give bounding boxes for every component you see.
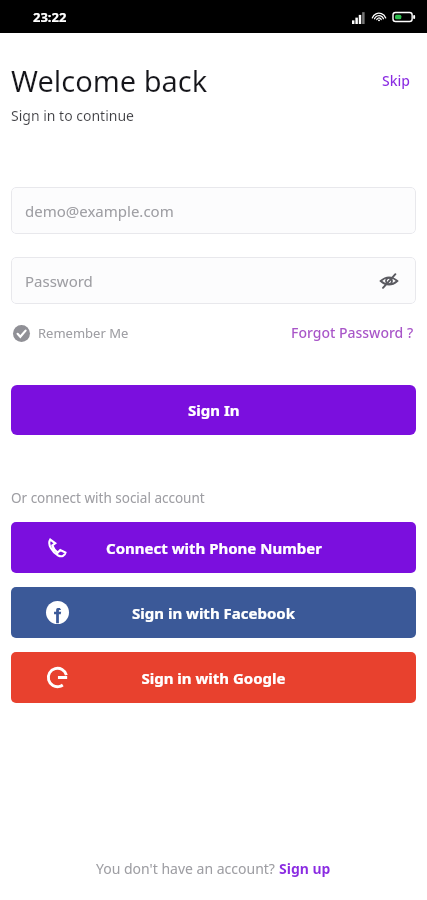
button[interactable]: Connect with Phone Number xyxy=(11,522,416,573)
button[interactable]: Sign in with Facebook xyxy=(11,587,416,638)
staticText: Welcome back xyxy=(11,61,208,100)
staticText: Connect with Phone Number xyxy=(106,538,322,558)
button[interactable]: Password xyxy=(11,257,416,304)
staticText: Sign in with Facebook xyxy=(132,603,295,623)
button[interactable]: Sign up xyxy=(279,859,331,878)
staticText: You don't have an account? xyxy=(96,859,279,878)
staticText: Forgot Password ? xyxy=(291,323,414,342)
button[interactable]: demo@example.com xyxy=(11,187,416,234)
staticText: Skip xyxy=(382,71,410,90)
staticText: demo@example.com xyxy=(25,201,174,221)
button[interactable]: Sign In xyxy=(11,385,416,435)
button[interactable]: Forgot Password ? xyxy=(289,320,416,345)
staticText: Sign up xyxy=(279,859,331,878)
staticText: Sign in to continue xyxy=(11,106,134,125)
button[interactable]: Remember Me xyxy=(11,321,131,345)
staticText: Password xyxy=(25,271,93,291)
staticText: Or connect with social account xyxy=(11,489,205,507)
staticText: Remember Me xyxy=(38,324,129,342)
button[interactable]: Toggle password visibility xyxy=(376,268,402,294)
button[interactable]: Skip xyxy=(376,67,416,94)
staticText: Sign In xyxy=(188,400,240,420)
button[interactable]: Sign in with Google xyxy=(11,652,416,703)
staticText: Sign in with Google xyxy=(141,668,286,688)
staticText: 23:22 xyxy=(33,8,67,26)
